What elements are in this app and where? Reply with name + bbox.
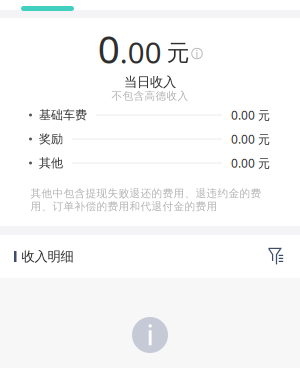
staticText: 0	[98, 23, 120, 74]
staticText: 收入明细	[21, 248, 73, 265]
staticText: 0.00 元	[231, 131, 270, 147]
staticText: i	[195, 46, 198, 61]
staticText: 0.00 元	[231, 107, 270, 123]
staticText: i	[146, 317, 153, 353]
staticText: .00	[120, 33, 162, 72]
button[interactable]: Filter	[268, 247, 284, 266]
staticText: 0.00 元	[231, 155, 270, 171]
staticText: 奖励	[39, 132, 63, 146]
staticText: 其他	[39, 156, 63, 170]
staticText: 元	[167, 39, 190, 67]
staticText: 基础车费	[39, 108, 87, 122]
staticText: 当日收入	[124, 74, 176, 90]
staticText: 其他中包含提现失败退还的费用、退违约金的费用、订单补偿的费用和代退付金的费用	[30, 187, 261, 213]
staticText: 不包含高德收入	[111, 89, 188, 102]
